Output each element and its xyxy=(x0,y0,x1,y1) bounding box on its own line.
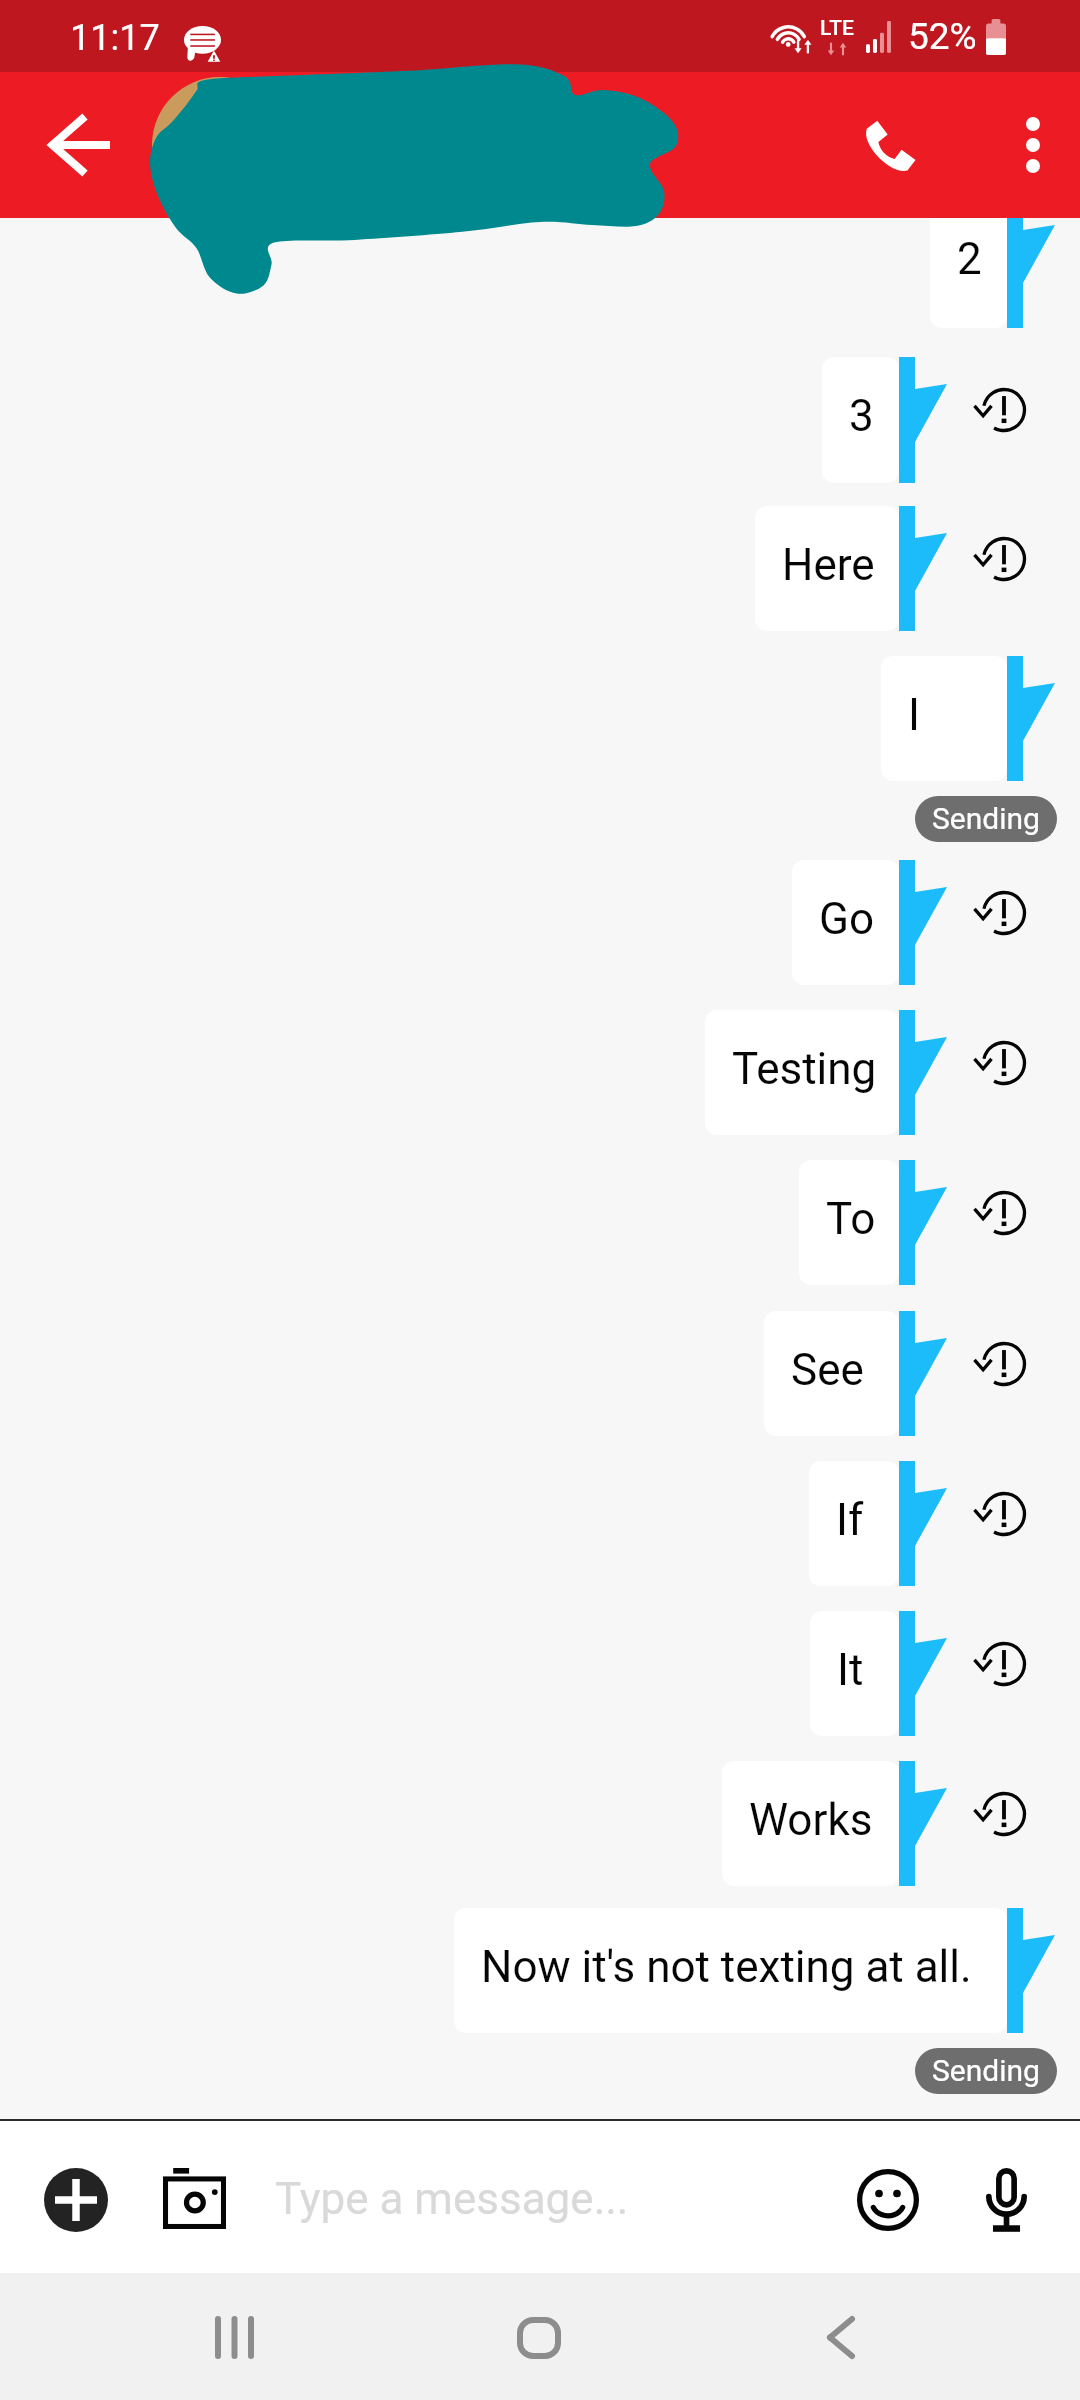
button[interactable]: To xyxy=(0,1160,1080,1285)
staticText: Go xyxy=(819,893,875,945)
staticText: LTE xyxy=(820,16,854,41)
button[interactable]: Add attachment xyxy=(28,2152,124,2248)
button[interactable]: Home xyxy=(475,2273,603,2400)
staticText: Works xyxy=(749,1794,873,1846)
staticText: Here xyxy=(782,539,875,591)
button[interactable]: 2 xyxy=(0,218,1080,328)
staticText: 2 xyxy=(957,233,982,285)
staticText: It xyxy=(837,1644,864,1696)
staticText: Testing xyxy=(732,1043,877,1095)
button[interactable]: Works xyxy=(0,1761,1080,1886)
button[interactable]: Retry sending xyxy=(963,1461,1045,1586)
button[interactable]: Go xyxy=(0,860,1080,985)
button[interactable]: Back xyxy=(28,93,132,197)
button[interactable]: 3 xyxy=(0,357,1080,483)
button[interactable]: Recents xyxy=(170,2273,298,2400)
button[interactable]: If xyxy=(0,1461,1080,1586)
button[interactable]: Retry sending xyxy=(963,1160,1045,1285)
button[interactable]: Retry sending xyxy=(963,357,1045,483)
staticText: If xyxy=(836,1494,864,1546)
button[interactable]: Emoji xyxy=(840,2152,936,2248)
button[interactable]: Here xyxy=(0,506,1080,631)
button[interactable]: More options xyxy=(988,100,1078,190)
button[interactable]: It xyxy=(0,1611,1080,1736)
button[interactable]: Type a message... xyxy=(250,2141,830,2253)
staticText: Sending xyxy=(932,801,1040,836)
button[interactable]: Retry sending xyxy=(963,1311,1045,1436)
staticText: See xyxy=(791,1344,864,1396)
button[interactable]: Retry sending xyxy=(963,860,1045,985)
staticText: I xyxy=(908,689,920,741)
button[interactable]: Retry sending xyxy=(963,1010,1045,1135)
staticText: To xyxy=(826,1193,876,1245)
button[interactable]: Camera xyxy=(146,2152,242,2248)
button[interactable]: Retry sending xyxy=(963,1761,1045,1886)
button[interactable]: Voice message xyxy=(958,2152,1054,2248)
staticText: 11:17 xyxy=(70,17,160,59)
button[interactable]: Call xyxy=(838,93,942,197)
staticText: 3 xyxy=(849,390,874,442)
button[interactable]: Retry sending xyxy=(963,1611,1045,1736)
button[interactable]: Retry sending xyxy=(963,506,1045,631)
button[interactable]: Now it's not texting at all. xyxy=(0,1908,1080,2033)
staticText: Sending xyxy=(932,2053,1040,2088)
staticText: Type a message... xyxy=(275,2173,629,2225)
staticText: Now it's not texting at all. xyxy=(481,1941,972,1993)
button[interactable]: I xyxy=(0,656,1080,781)
button[interactable]: See xyxy=(0,1311,1080,1436)
button[interactable]: Testing xyxy=(0,1010,1080,1135)
button[interactable]: Back xyxy=(777,2273,905,2400)
staticText: 52% xyxy=(908,15,977,58)
